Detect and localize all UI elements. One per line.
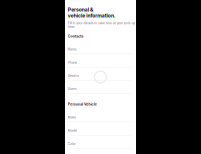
- button[interactable]: Send to: [0, 23, 201, 96]
- button[interactable]: Users: [0, 96, 201, 154]
- button[interactable]: Phone: [0, 0, 201, 23]
